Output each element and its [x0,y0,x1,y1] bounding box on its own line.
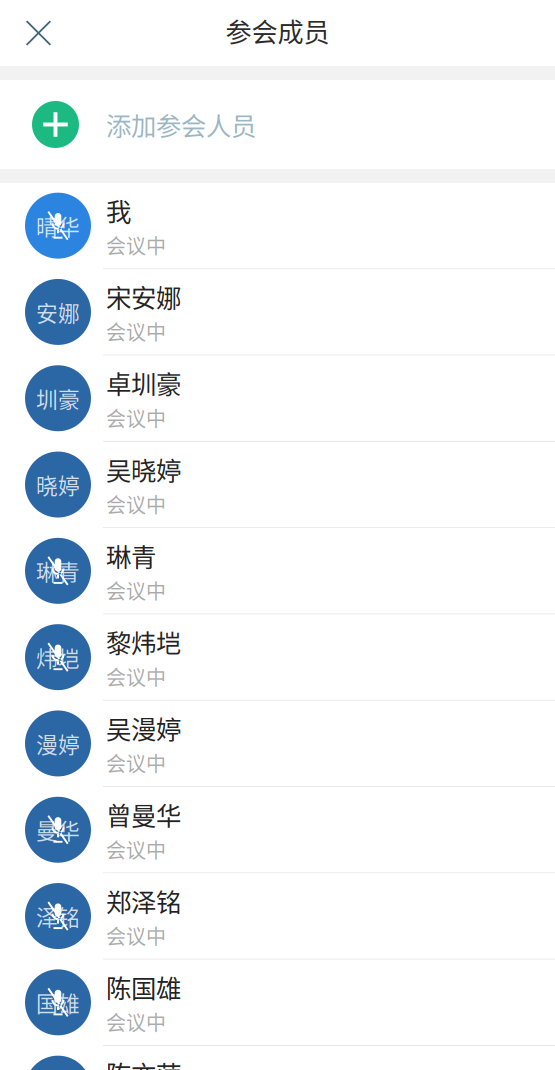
staticText: 炜垲 [36,641,80,673]
button[interactable]: 琳青 [0,528,555,614]
staticText: 安娜 [36,296,80,328]
staticText: 会议中 [106,1007,166,1036]
staticText: 黎炜垲 [106,623,181,660]
staticText: 曼华 [36,814,80,845]
staticText: 会议中 [106,576,166,605]
staticText: 会议中 [106,835,166,864]
button[interactable]: 晓婷 [0,442,555,528]
staticText: 漫婷 [36,728,80,759]
staticText: 圳豪 [36,382,80,414]
staticText: 郑泽铭 [106,882,181,919]
button[interactable]: 国雄 [0,960,555,1046]
staticText: 泽铭 [36,900,80,932]
staticText: 曾曼华 [106,796,181,833]
staticText: 琳青 [106,537,156,574]
staticText: 琳青 [36,555,80,587]
staticText: 添加参会人员 [106,106,256,143]
button[interactable]: 泽铭 [0,873,555,960]
staticText: 会议中 [106,748,166,777]
button[interactable]: 漫婷 [0,701,555,787]
staticText: 吴漫婷 [106,709,181,746]
staticText: 晴华 [36,210,80,241]
staticText: 会议中 [106,489,166,518]
button[interactable]: 添加参会人员 [0,80,555,169]
button[interactable]: 亦萍 [0,1046,555,1070]
staticText: 陈亦萍 [106,1055,181,1070]
staticText: 宋安娜 [106,278,181,315]
button[interactable]: 晴华 [0,183,555,269]
staticText: 会议中 [106,662,166,691]
staticText: 国雄 [36,987,80,1018]
staticText: 会议中 [106,403,166,432]
staticText: 会议中 [106,921,166,950]
button[interactable]: 安娜 [0,269,555,356]
staticText: 会议中 [106,231,166,260]
staticText: 卓圳豪 [106,364,181,401]
staticText: 陈国雄 [106,968,181,1005]
button[interactable]: 圳豪 [0,356,555,442]
staticText: 我 [106,192,131,229]
staticText: 参会成员 [225,12,329,49]
staticText: 会议中 [106,317,166,346]
button[interactable]: 炜垲 [0,614,555,701]
button[interactable]: Close [0,0,65,66]
staticText: 吴晓婷 [106,451,181,487]
button[interactable]: 曼华 [0,787,555,873]
staticText: 晓婷 [36,469,80,500]
